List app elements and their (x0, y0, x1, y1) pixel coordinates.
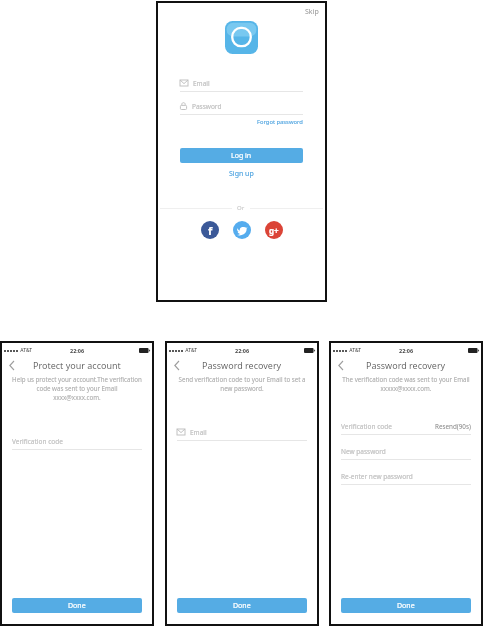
button[interactable]: Sign in with Facebook (201, 221, 219, 239)
staticText: Or (237, 204, 245, 212)
button[interactable]: Verification code (341, 418, 471, 435)
staticText: Password (192, 102, 222, 111)
staticText: AT&T (348, 347, 362, 354)
button[interactable]: Email (177, 424, 307, 441)
button[interactable]: Done (341, 598, 471, 613)
button[interactable]: Forgot password (257, 118, 303, 126)
staticText: Forgot password (257, 118, 303, 126)
staticText: Email (190, 428, 207, 437)
staticText: Email (193, 79, 210, 88)
button[interactable]: Done (177, 598, 307, 613)
button[interactable]: Sign in with Google Plus (265, 221, 283, 239)
staticText: AT&T (19, 347, 33, 354)
staticText: g+ (269, 225, 279, 236)
button[interactable]: Back (4, 358, 18, 372)
staticText: Password recovery (366, 359, 446, 371)
button[interactable]: Back (169, 358, 183, 372)
staticText: 22:06 (235, 347, 250, 354)
staticText: Send verification code to your Email to … (177, 375, 307, 393)
button[interactable]: Verification code (12, 433, 142, 450)
staticText: 22:06 (70, 347, 85, 354)
staticText: Verification code (341, 422, 392, 431)
staticText: Password recovery (202, 359, 282, 371)
staticText: New password (341, 447, 386, 456)
button[interactable]: Done (12, 598, 142, 613)
staticText: Done (68, 601, 86, 611)
button[interactable]: Skip (305, 7, 319, 17)
staticText: Protect your account (33, 359, 121, 371)
staticText: Help us protect your account.The verific… (12, 375, 142, 402)
staticText: Done (233, 601, 251, 611)
staticText: The verification code was sent to your E… (341, 375, 471, 393)
button[interactable]: Log in (180, 148, 303, 163)
button[interactable]: Back (333, 358, 347, 372)
button[interactable]: New password (341, 443, 471, 460)
staticText: Done (397, 601, 415, 611)
button[interactable]: Sign in with Twitter (233, 221, 251, 239)
staticText: f (208, 223, 213, 238)
staticText: Sign up (229, 169, 254, 179)
staticText: Verification code (12, 437, 63, 446)
staticText: Skip (305, 7, 319, 17)
button[interactable]: Sign up (229, 169, 254, 179)
staticText: AT&T (184, 347, 198, 354)
staticText: Resend(90s) (435, 422, 471, 431)
button[interactable]: Re-enter new password (341, 468, 471, 485)
staticText: 22:06 (399, 347, 414, 354)
button[interactable]: Email (180, 75, 303, 92)
staticText: Re-enter new password (341, 472, 413, 481)
button[interactable]: Password (180, 98, 303, 115)
staticText: Log in (231, 151, 252, 161)
